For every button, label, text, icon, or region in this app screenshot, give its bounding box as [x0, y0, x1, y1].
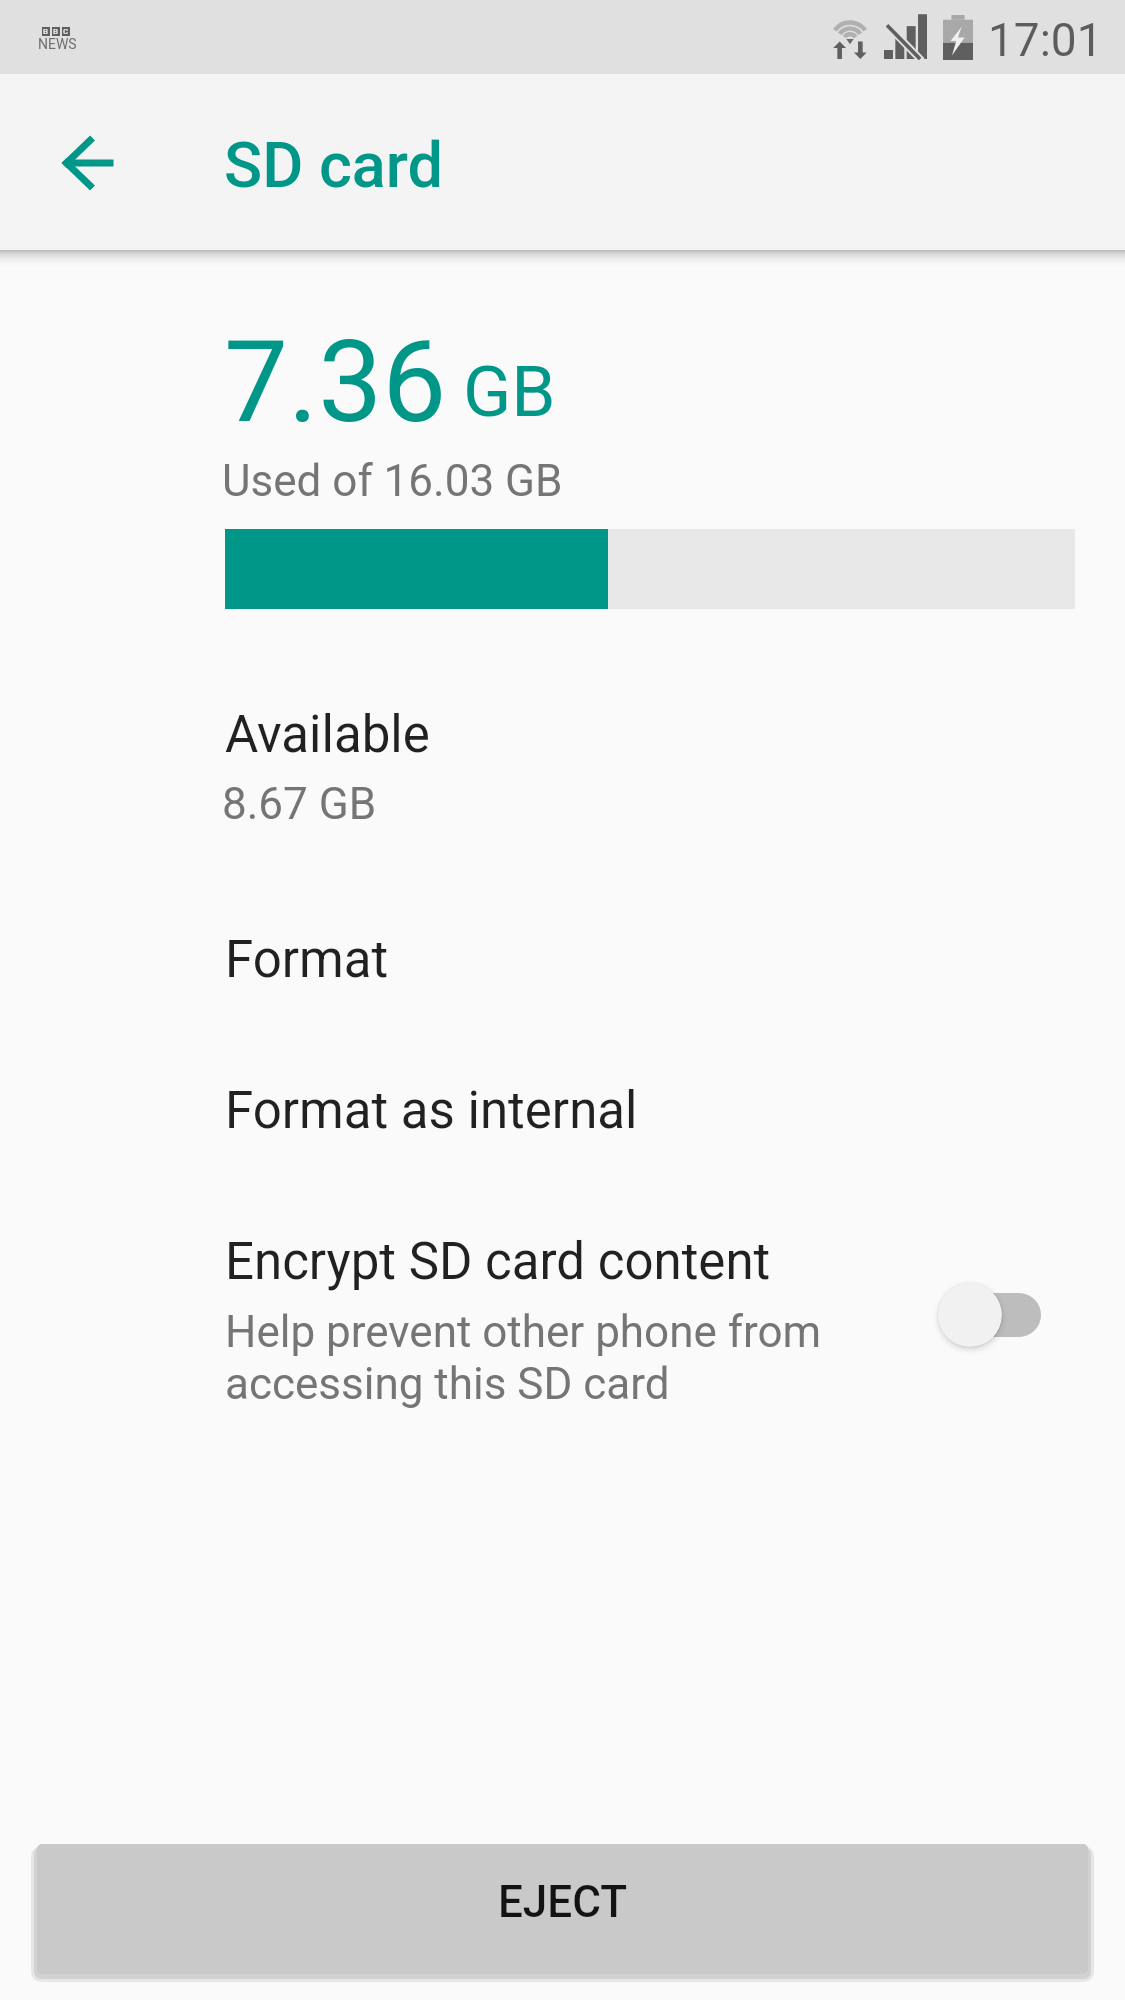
staticText: C — [63, 27, 69, 36]
staticText: Encrypt SD card content — [225, 1232, 771, 1292]
staticText: 17:01 — [988, 13, 1103, 67]
button[interactable]: EJECT — [37, 1844, 1088, 1974]
staticText: 8.67 GB — [222, 778, 377, 830]
staticText: 7.36 — [224, 315, 447, 449]
staticText: Format — [225, 930, 389, 990]
button[interactable]: Available — [0, 670, 1125, 850]
staticText: B — [43, 27, 49, 36]
button[interactable]: Encrypt SD card content — [0, 1180, 1125, 1440]
staticText: EJECT — [498, 1876, 628, 1928]
button[interactable]: Encrypt SD card content — [930, 1275, 1070, 1361]
button[interactable]: Back — [34, 109, 142, 217]
button[interactable]: Format — [0, 880, 1125, 1010]
staticText: GB — [463, 350, 556, 433]
staticText: B — [53, 27, 59, 36]
staticText: Format as internal — [225, 1081, 638, 1141]
staticText: Help prevent other phone from accessing … — [225, 1306, 822, 1410]
button[interactable]: Format as internal — [0, 1030, 1125, 1160]
staticText: NEWS — [38, 36, 77, 52]
staticText: Used of 16.03 GB — [222, 455, 563, 507]
staticText: SD card — [224, 129, 443, 203]
staticText: Available — [225, 705, 430, 765]
